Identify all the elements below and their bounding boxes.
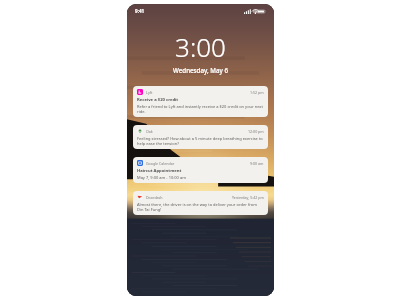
staticText: Refer a friend to Lyft and instantly rec… (137, 104, 264, 114)
staticText: Google Calendar (146, 161, 175, 166)
staticText: Doordash (146, 195, 163, 200)
button[interactable]: Doordash (133, 191, 268, 215)
staticText: 1:52 pm (250, 90, 264, 95)
button[interactable]: Google Calendar (133, 157, 268, 183)
staticText: May 7, 9:00 am - 10:00 am (137, 175, 186, 180)
staticText: Lyft (146, 90, 153, 95)
button[interactable]: Oak (133, 125, 268, 149)
staticText: 3:00 (127, 29, 274, 64)
staticText: Feeling stressed? How about a 5 minute d… (137, 136, 264, 146)
staticText: Almost there, the driver is on the way t… (137, 202, 264, 212)
staticText: Yesterday, 5:42 pm (232, 195, 264, 200)
staticText: Wednesday, May 6 (127, 66, 274, 74)
staticText: Oak (146, 129, 153, 134)
staticText: 9:00 am (250, 161, 264, 166)
staticText: 9:41 (135, 8, 145, 14)
staticText: Receive a $20 credit (137, 97, 179, 103)
button[interactable]: Lyft (133, 86, 268, 117)
staticText: 12:00 pm (248, 129, 264, 134)
staticText: Haircut Appointment (137, 168, 182, 174)
